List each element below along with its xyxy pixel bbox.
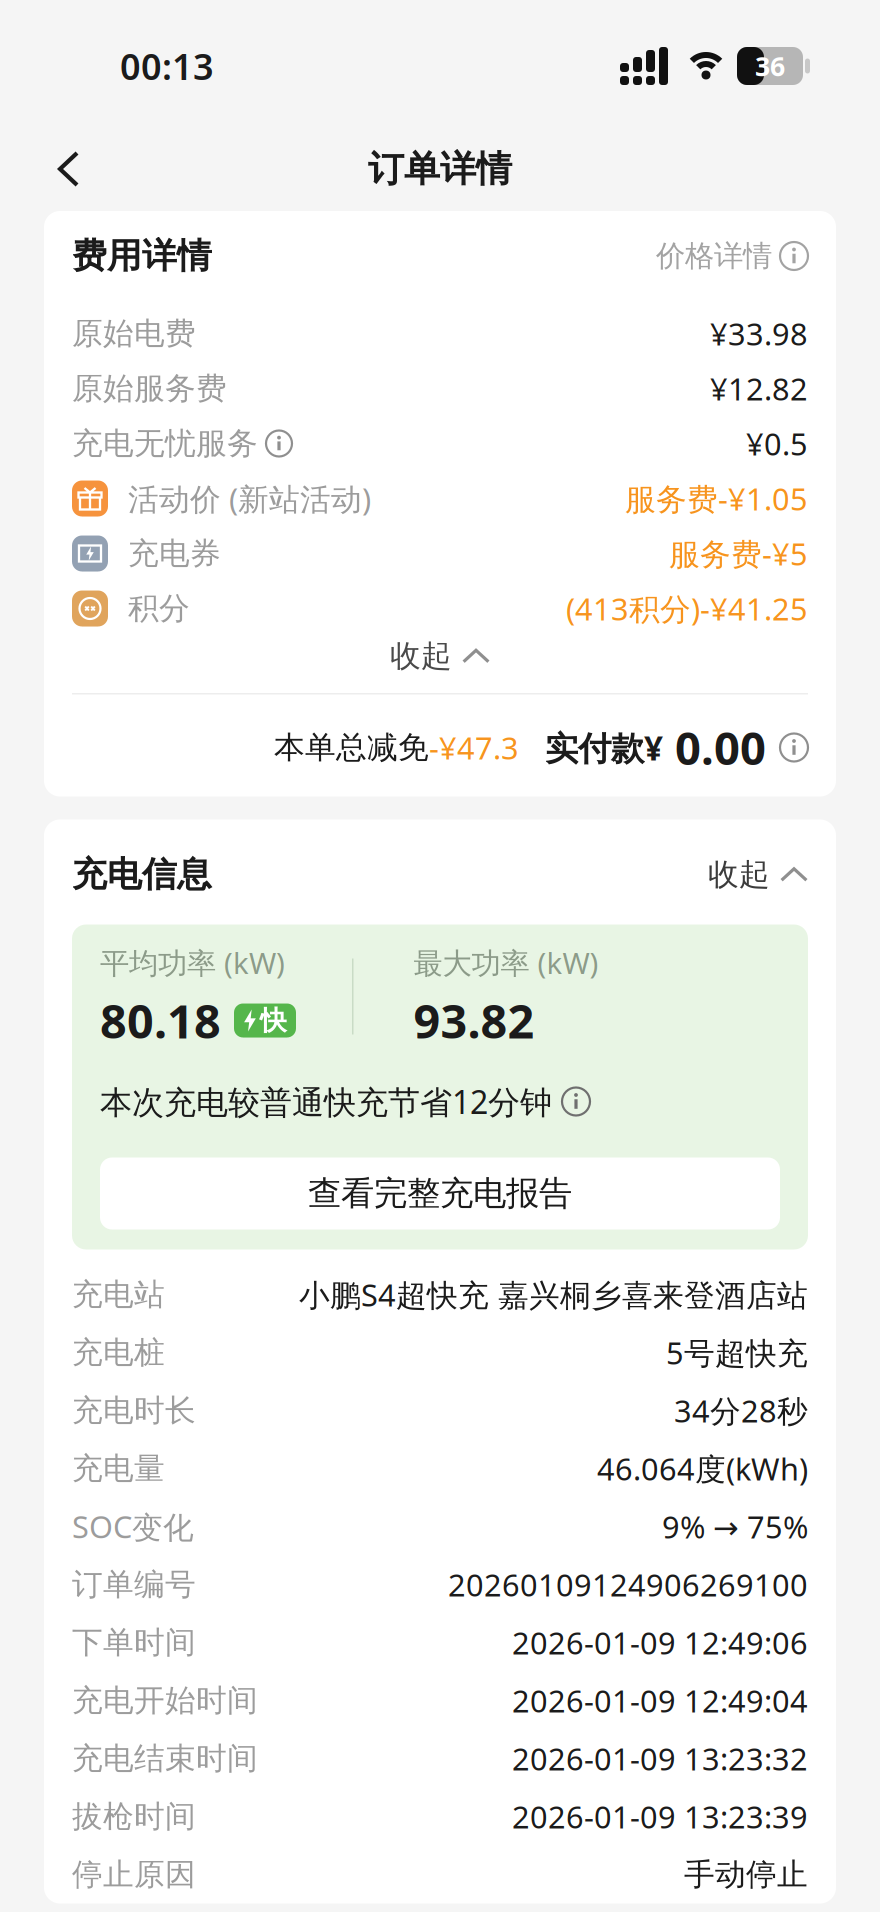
- staticText: ¥0.5: [746, 423, 808, 464]
- staticText: 00:13: [120, 42, 214, 90]
- staticText: 2026-01-09 13:23:32: [512, 1738, 808, 1779]
- staticText: 订单编号: [72, 1566, 196, 1603]
- staticText: 充电站: [72, 1276, 165, 1313]
- staticText: 停止原因: [72, 1856, 196, 1893]
- staticText: 服务费-¥5: [669, 533, 808, 574]
- staticText: 实付款¥: [545, 725, 663, 770]
- staticText: SOC变化: [72, 1506, 194, 1547]
- staticText: ¥33.98: [710, 313, 808, 354]
- staticText: 充电无忧服务: [72, 425, 258, 462]
- staticText: 充电时长: [72, 1392, 196, 1429]
- button[interactable]: 节省时间说明: [562, 1087, 590, 1115]
- staticText: 2026-01-09 12:49:04: [512, 1680, 808, 1721]
- staticText: 费用详情: [72, 235, 212, 277]
- staticText: 小鹏S4超快充 嘉兴桐乡喜来登酒店站: [299, 1274, 808, 1315]
- button[interactable]: 充电无忧服务说明: [258, 430, 292, 456]
- staticText: 9% → 75%: [662, 1506, 808, 1547]
- staticText: 收起: [390, 637, 452, 675]
- staticText: 充电券: [128, 535, 221, 572]
- button[interactable]: 收起: [390, 636, 490, 676]
- staticText: 5号超快充: [666, 1332, 808, 1373]
- button[interactable]: 实付款说明: [766, 733, 808, 761]
- staticText: 积分: [128, 590, 190, 627]
- staticText: 0.00: [663, 717, 766, 778]
- staticText: 平均功率 (kW): [100, 943, 285, 982]
- staticText: 80.18: [100, 989, 221, 1051]
- staticText: 2026-01-09 13:23:39: [512, 1796, 808, 1837]
- staticText: 20260109124906269100: [448, 1564, 808, 1605]
- staticText: 充电量: [72, 1450, 165, 1487]
- button[interactable]: 查看完整充电报告: [100, 1157, 780, 1229]
- staticText: 本单总减免: [274, 729, 429, 766]
- staticText: 充电结束时间: [72, 1740, 258, 1777]
- staticText: 34分28秒: [674, 1390, 808, 1431]
- staticText: -¥47.3: [429, 727, 519, 768]
- staticText: 收起: [708, 856, 770, 893]
- staticText: 拔枪时间: [72, 1798, 196, 1835]
- staticText: 本次充电较普通快充节省12分钟: [100, 1080, 552, 1123]
- staticText: 价格详情: [656, 238, 772, 274]
- staticText: 原始电费: [72, 315, 196, 352]
- staticText: 最大功率 (kW): [413, 943, 598, 982]
- staticText: 充电信息: [72, 853, 212, 896]
- staticText: 活动价 (新站活动): [128, 478, 371, 519]
- button[interactable]: 收起: [708, 856, 808, 893]
- staticText: 36: [755, 48, 785, 84]
- staticText: 订单详情: [368, 147, 512, 191]
- staticText: 快: [260, 1004, 287, 1037]
- button[interactable]: 返回: [0, 152, 80, 186]
- button[interactable]: 价格详情: [656, 238, 808, 274]
- staticText: 下单时间: [72, 1624, 196, 1661]
- staticText: (413积分)-¥41.25: [566, 588, 808, 629]
- staticText: 充电桩: [72, 1334, 165, 1371]
- staticText: 充电开始时间: [72, 1682, 258, 1719]
- staticText: 查看完整充电报告: [308, 1173, 572, 1214]
- staticText: 93.82: [413, 989, 534, 1051]
- staticText: 服务费-¥1.05: [625, 478, 808, 519]
- staticText: 原始服务费: [72, 370, 227, 407]
- staticText: 手动停止: [684, 1856, 808, 1893]
- staticText: ¥12.82: [710, 368, 808, 409]
- staticText: 46.064度(kWh): [597, 1448, 808, 1489]
- staticText: 2026-01-09 12:49:06: [512, 1622, 808, 1663]
